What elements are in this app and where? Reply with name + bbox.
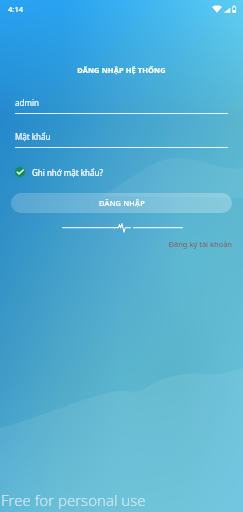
button[interactable]: admin: [15, 97, 228, 114]
button[interactable]: Ghi nhớ mật khẩu?: [13, 165, 103, 179]
staticText: admin: [15, 97, 39, 108]
staticText: Ghi nhớ mật khẩu?: [32, 167, 103, 178]
button[interactable]: Đăng ký tài khoản: [168, 239, 232, 249]
staticText: Free for personal use: [1, 490, 146, 510]
staticText: 4:14: [8, 4, 24, 14]
button[interactable]: ĐĂNG NHẬP: [11, 193, 232, 213]
staticText: ĐĂNG NHẬP: [99, 198, 145, 208]
staticText: ĐĂNG NHẬP HỆ THỐNG: [0, 65, 243, 75]
button[interactable]: Mật khẩu: [15, 131, 228, 148]
staticText: Mật khẩu: [15, 131, 51, 142]
